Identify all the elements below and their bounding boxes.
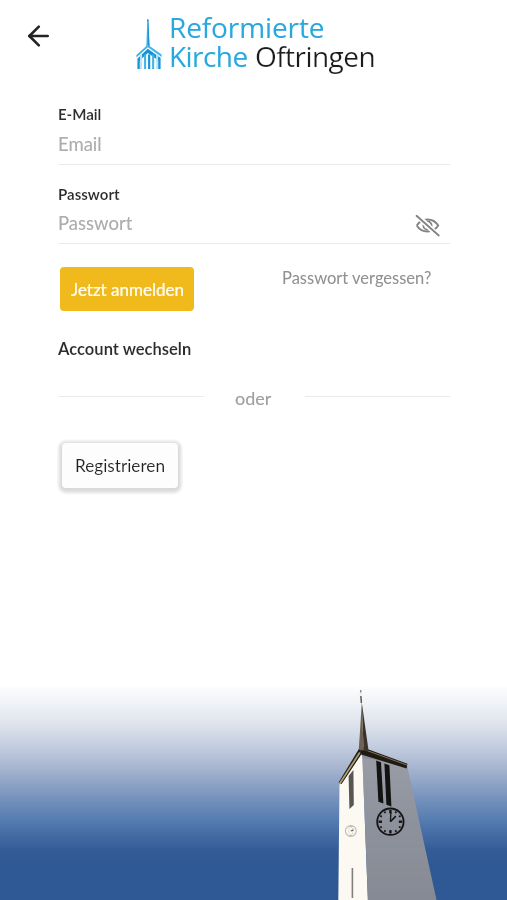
staticText: Account wechseln: [58, 339, 192, 359]
button[interactable]: Account wechseln: [58, 339, 192, 359]
staticText: Jetzt anmelden: [71, 279, 184, 299]
button[interactable]: Registrieren: [62, 443, 178, 488]
button[interactable]: Jetzt anmelden: [60, 267, 194, 311]
staticText: Oftringen: [255, 37, 376, 75]
staticText: Passwort: [58, 185, 120, 203]
staticText: Email: [58, 133, 102, 155]
button[interactable]: Passwort vergessen?: [278, 264, 436, 292]
staticText: Reformierte: [169, 8, 325, 46]
staticText: Passwort vergessen?: [282, 268, 432, 288]
button[interactable]: Passwort anzeigen: [412, 210, 442, 240]
staticText: E-Mail: [58, 105, 102, 123]
staticText: Kirche: [169, 37, 255, 75]
staticText: oder: [235, 387, 272, 409]
staticText: Registrieren: [75, 455, 165, 476]
button[interactable]: Back: [18, 16, 58, 56]
staticText: Passwort: [58, 212, 133, 234]
